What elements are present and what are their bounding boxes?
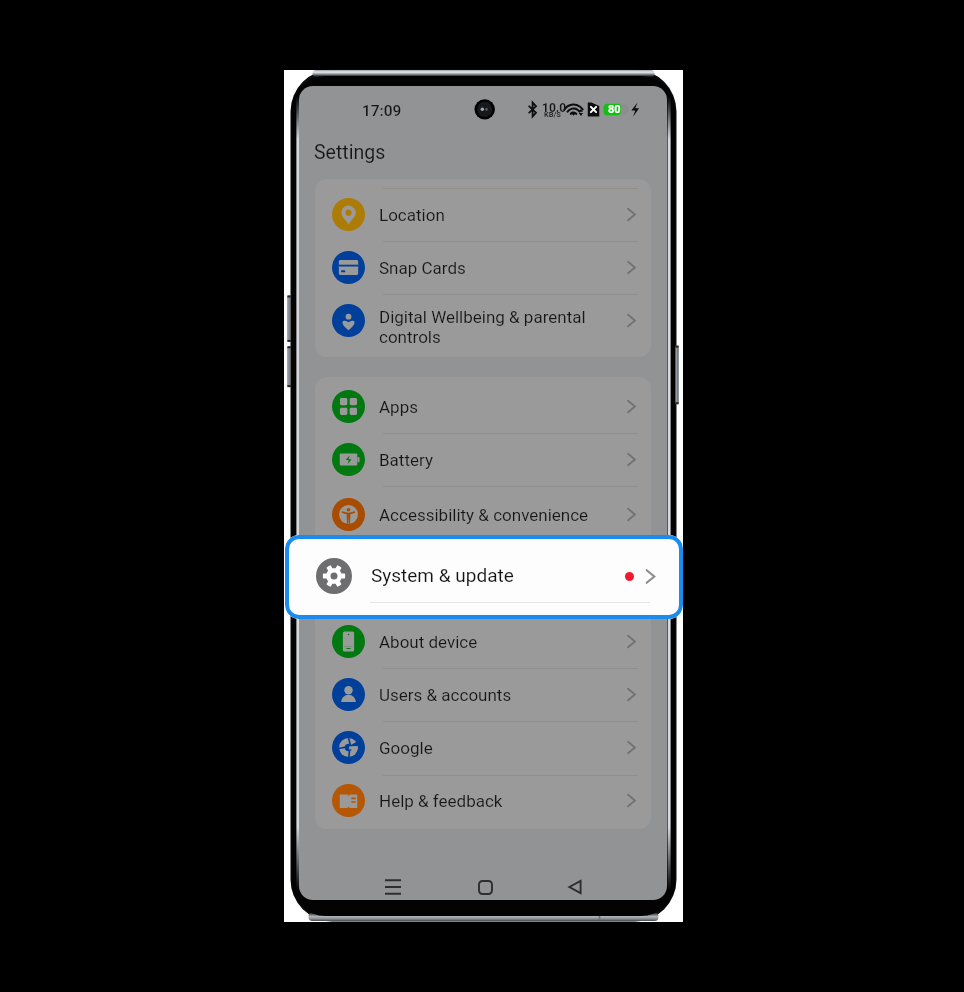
button[interactable]: Help & feedback <box>315 774 651 827</box>
staticText: 10.0 <box>542 101 567 115</box>
staticText: Digital Wellbeing & parental <box>379 307 586 327</box>
staticText: Help & feedback <box>379 791 503 811</box>
button[interactable]: Home <box>468 870 502 900</box>
staticText: Users & accounts <box>379 685 512 705</box>
staticText: KB/S <box>544 110 561 119</box>
staticText: 80 <box>608 103 621 116</box>
button[interactable]: Battery <box>315 433 651 486</box>
staticText: Settings <box>314 141 386 164</box>
button[interactable]: Accessibility & convenience <box>315 488 651 541</box>
staticText: System & update <box>371 564 514 586</box>
staticText: Location <box>379 205 445 225</box>
button[interactable]: Back <box>558 870 592 900</box>
button[interactable]: Recents <box>376 870 410 900</box>
staticText: 17:09 <box>362 102 402 120</box>
staticText: Snap Cards <box>379 258 466 278</box>
button[interactable]: Location <box>315 188 651 241</box>
button[interactable]: Google <box>315 721 651 774</box>
staticText: About device <box>379 632 478 652</box>
button[interactable]: Snap Cards <box>315 241 651 294</box>
staticText: Apps <box>379 397 418 417</box>
staticText: Battery <box>379 450 433 470</box>
staticText: Google <box>379 738 433 758</box>
button[interactable]: Digital Wellbeing & parental <box>315 294 651 347</box>
button[interactable]: System & update <box>285 535 683 619</box>
button[interactable]: Apps <box>315 380 651 433</box>
staticText: Accessibility & convenience <box>379 505 589 525</box>
button[interactable]: About device <box>315 615 651 668</box>
staticText: controls <box>379 327 441 347</box>
button[interactable]: Users & accounts <box>315 668 651 721</box>
